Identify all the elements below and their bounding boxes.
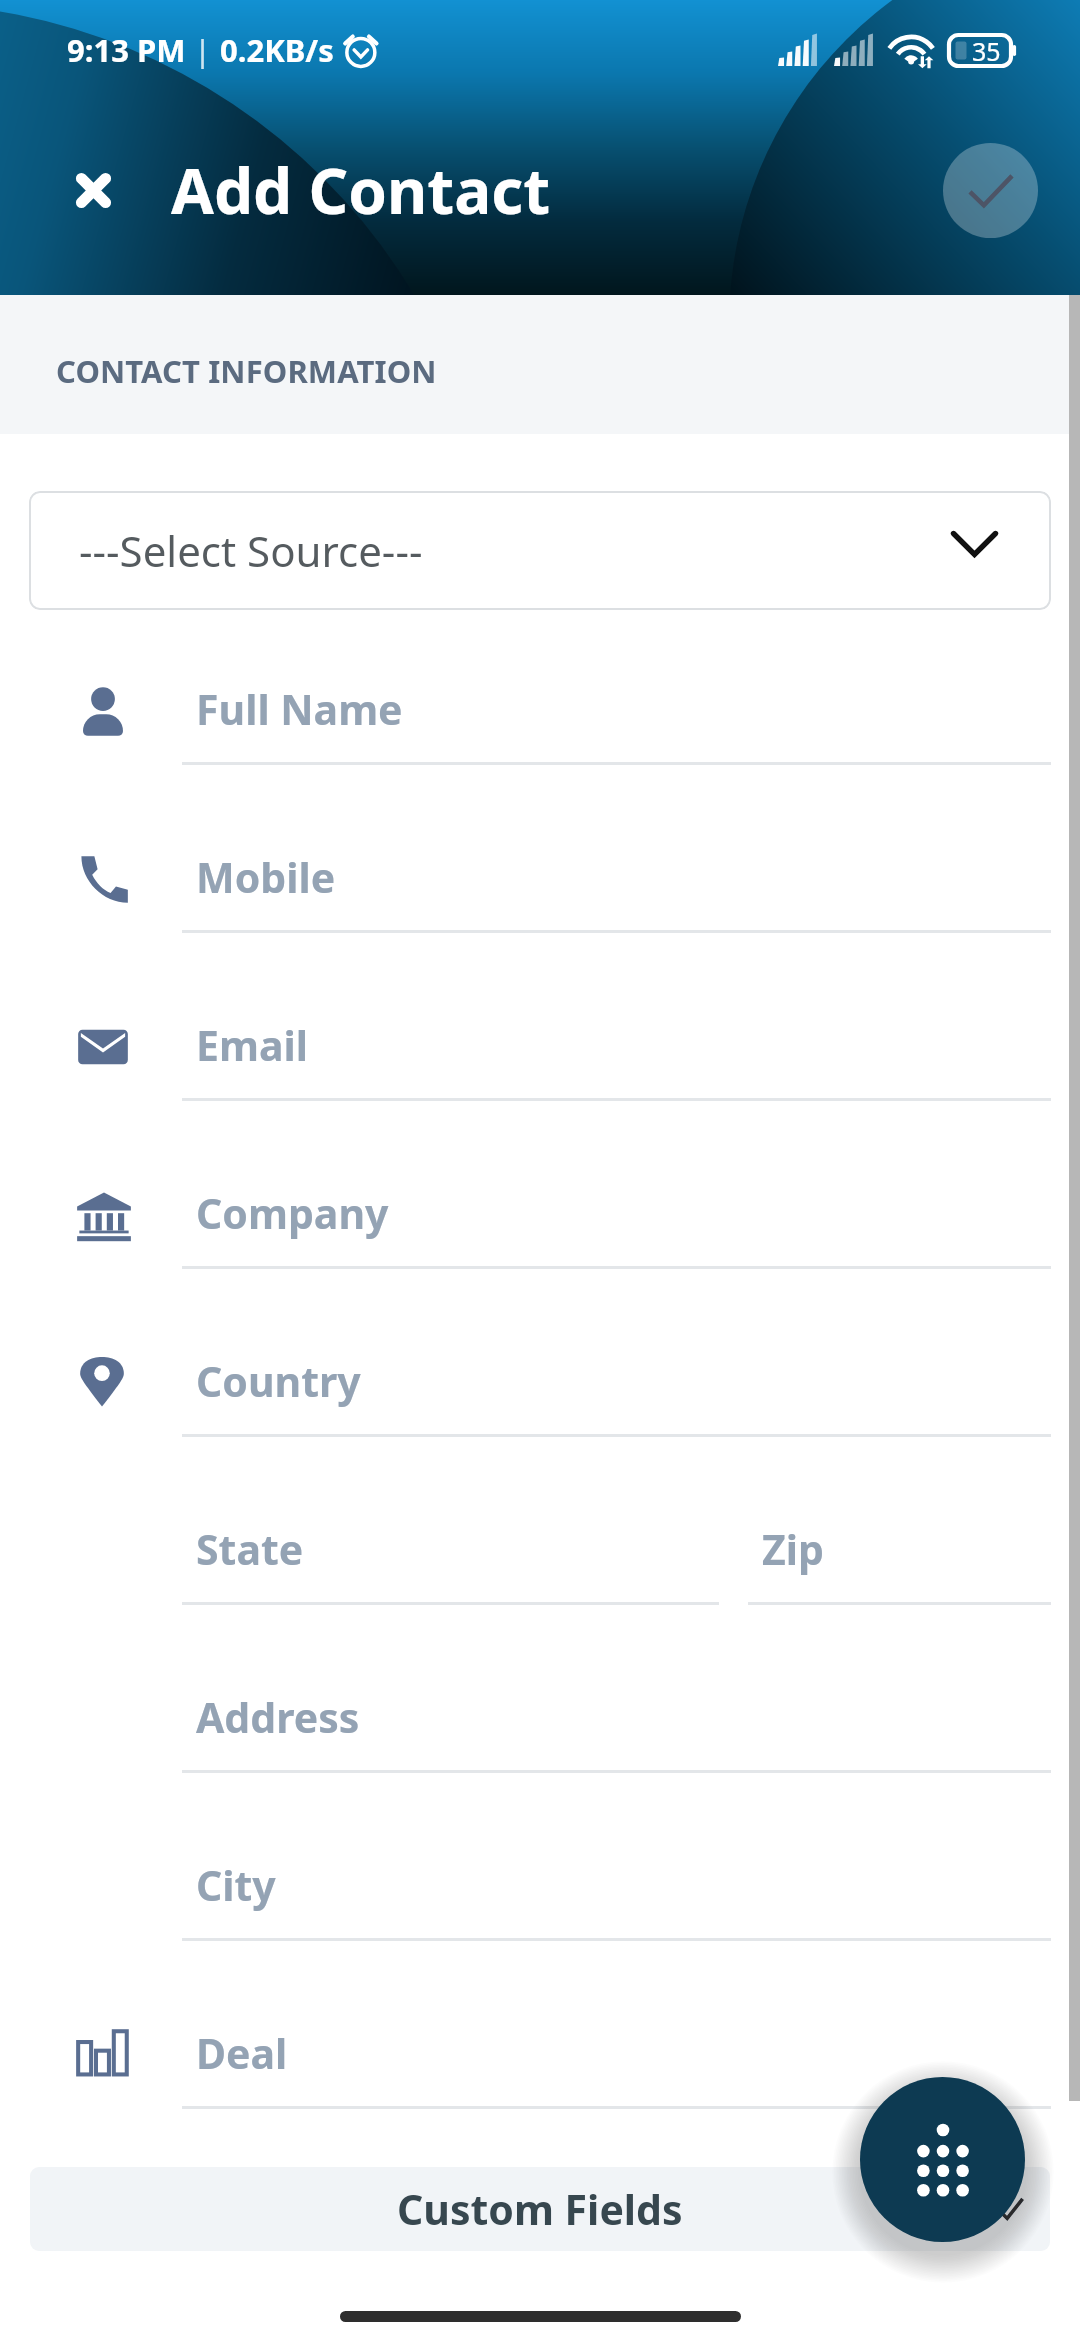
staticText: | — [186, 29, 220, 71]
staticText: Full Name — [196, 681, 403, 737]
staticText: 35 — [972, 34, 1001, 65]
button[interactable]: Full Name — [0, 597, 1080, 765]
staticText: 0.2KB/s — [220, 29, 334, 71]
staticText: State — [196, 1521, 304, 1577]
button[interactable]: Country — [0, 1269, 1080, 1437]
button[interactable]: Save — [943, 143, 1038, 238]
staticText: Address — [196, 1689, 360, 1745]
staticText: Custom Fields — [397, 2181, 683, 2237]
button[interactable]: Zip — [748, 1437, 1051, 1605]
staticText: 9:13 PM — [67, 29, 186, 71]
staticText: Company — [196, 1185, 389, 1241]
staticText: Zip — [762, 1521, 824, 1577]
button[interactable]: Company — [0, 1101, 1080, 1269]
staticText: Mobile — [196, 849, 336, 905]
button[interactable]: Dialpad — [860, 2077, 1025, 2242]
staticText: CONTACT INFORMATION — [56, 350, 437, 392]
button[interactable]: Mobile — [0, 765, 1080, 933]
staticText: ---Select Source--- — [79, 522, 423, 579]
staticText: Email — [196, 1017, 308, 1073]
staticText: City — [196, 1857, 276, 1913]
staticText: Deal — [196, 2025, 288, 2081]
button[interactable]: Close — [55, 152, 131, 228]
button[interactable]: ---Select Source--- — [29, 491, 1051, 610]
button[interactable]: Email — [0, 933, 1080, 1101]
button[interactable]: Deal — [0, 1941, 1080, 2109]
button[interactable]: Custom Fields — [30, 2167, 1050, 2251]
staticText: Country — [196, 1353, 361, 1409]
button[interactable]: Address — [0, 1605, 1080, 1773]
staticText: Add Contact — [171, 148, 551, 232]
button[interactable]: State — [0, 1437, 748, 1605]
button[interactable]: City — [0, 1773, 1080, 1941]
